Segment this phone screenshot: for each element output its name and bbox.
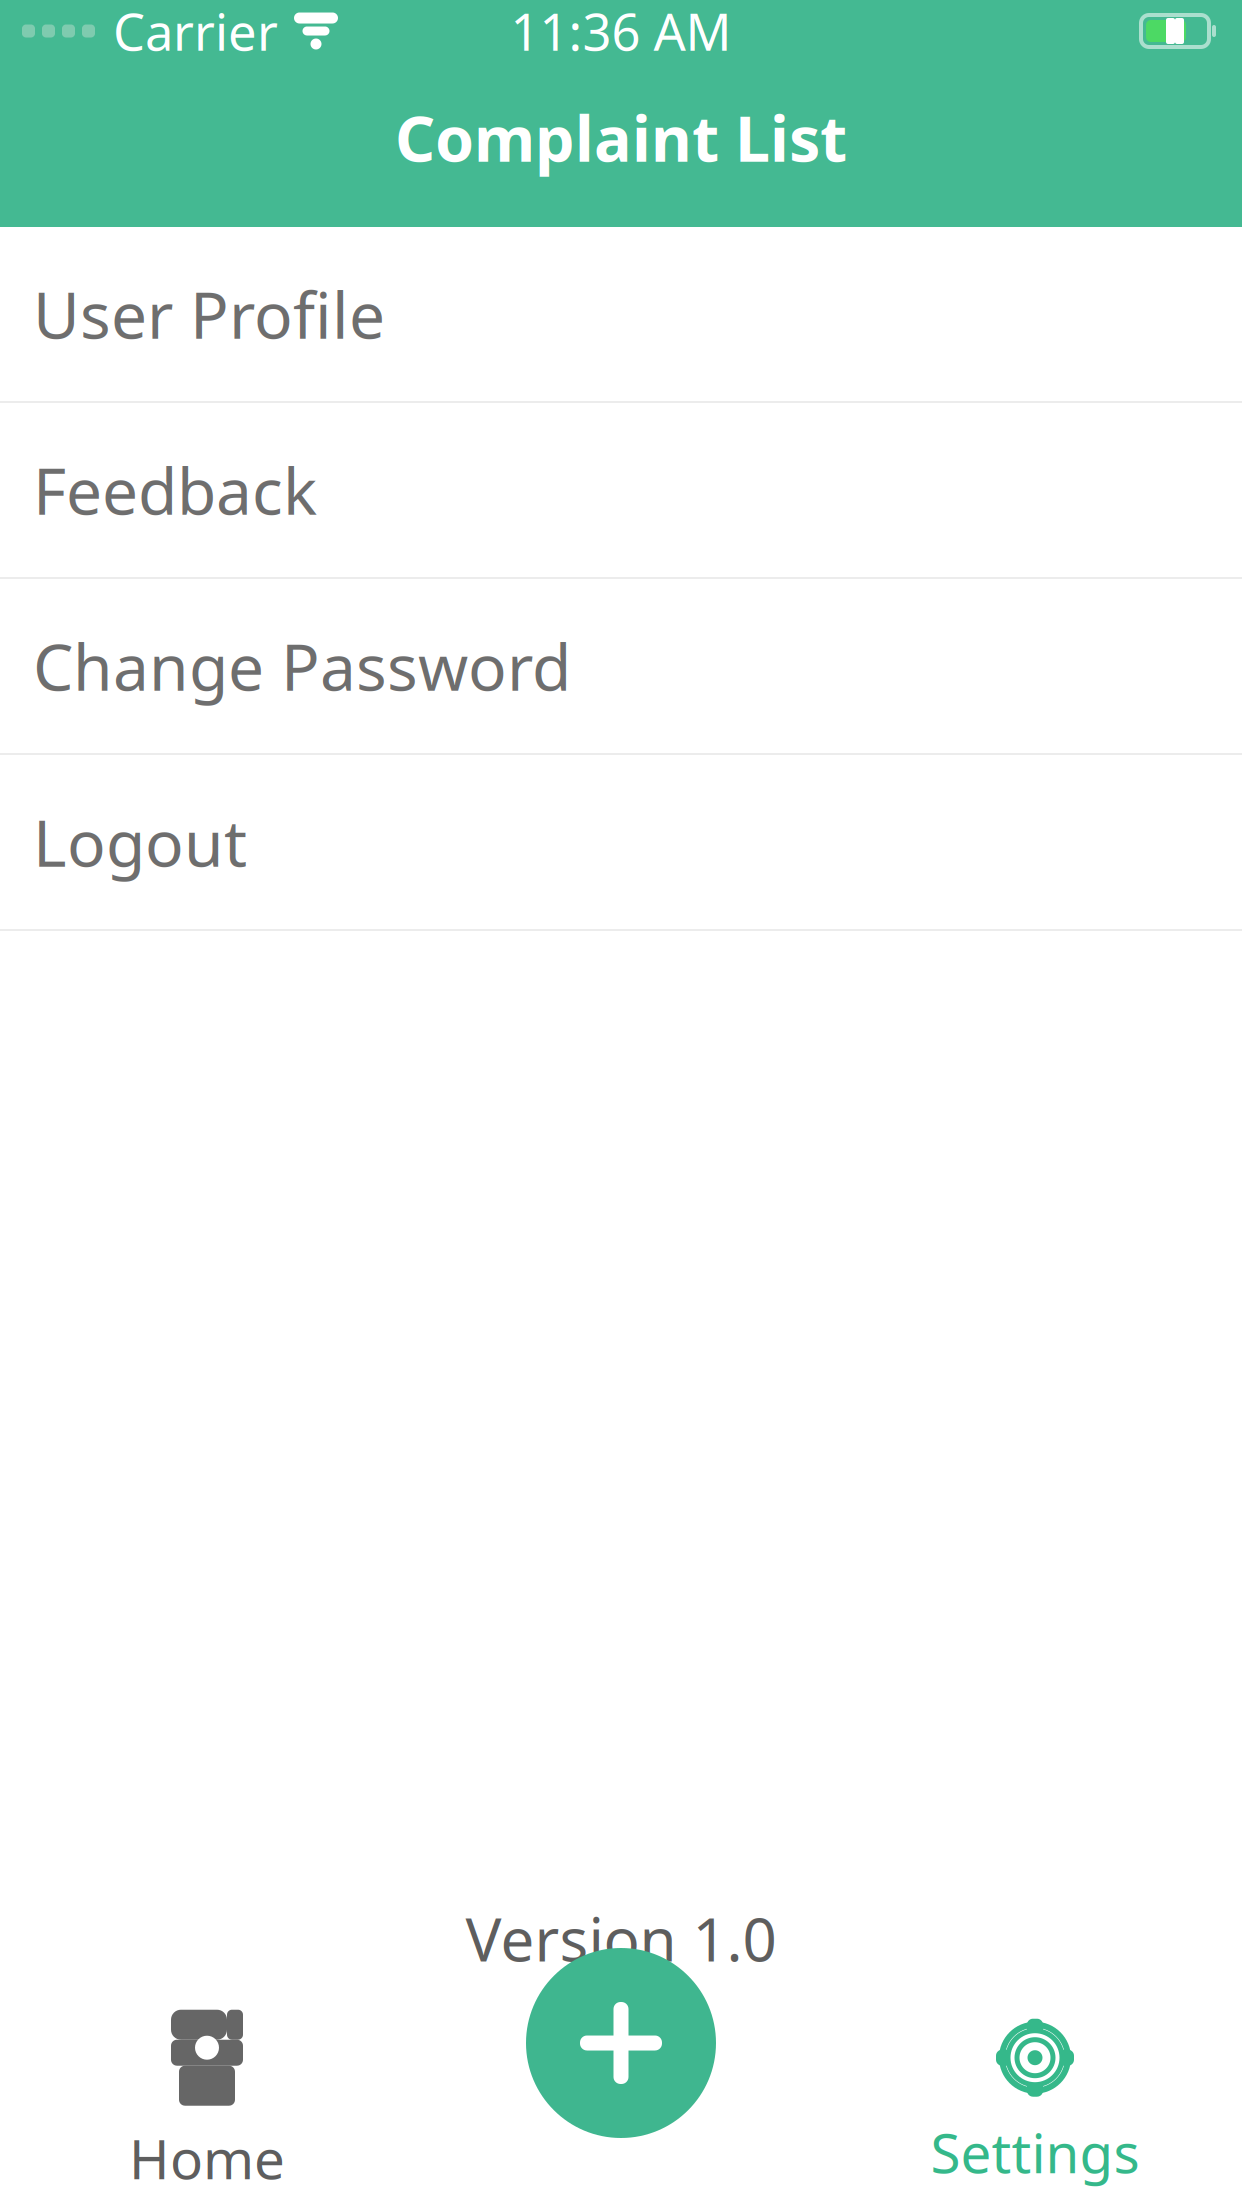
staticText: User Profile bbox=[33, 271, 385, 356]
button[interactable]: Change Password bbox=[0, 579, 1242, 755]
button[interactable]: Home bbox=[0, 1996, 414, 2208]
button[interactable]: Logout bbox=[0, 755, 1242, 931]
button[interactable]: User Profile bbox=[0, 227, 1242, 403]
staticText: Version 1.0 bbox=[465, 1898, 776, 1978]
staticText: Home bbox=[129, 2122, 285, 2194]
staticText: 11:36 AM bbox=[510, 0, 731, 65]
staticText: Settings bbox=[930, 2116, 1139, 2188]
button[interactable]: Add complaint bbox=[414, 1996, 828, 2208]
button[interactable]: Add bbox=[526, 1948, 716, 2138]
staticText: Complaint List bbox=[395, 96, 847, 179]
staticText: Change Password bbox=[33, 623, 571, 708]
staticText: Feedback bbox=[33, 447, 317, 532]
staticText: Logout bbox=[33, 799, 247, 884]
staticText: Carrier bbox=[113, 0, 278, 65]
button[interactable]: Feedback bbox=[0, 403, 1242, 579]
button[interactable]: Settings bbox=[828, 1996, 1242, 2208]
